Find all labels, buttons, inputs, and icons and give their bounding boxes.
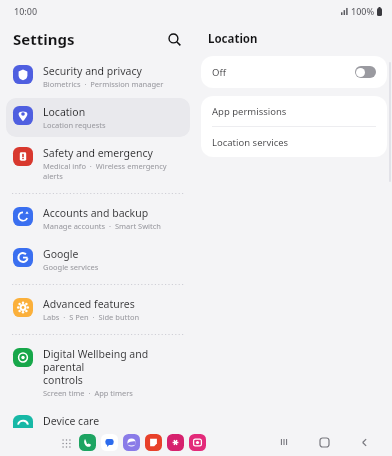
button[interactable]: Messages (101, 434, 118, 451)
button[interactable]: Location toggle, off (355, 66, 376, 78)
button[interactable]: Device care (6, 407, 190, 441)
button[interactable]: Safety and emergency (6, 139, 190, 188)
staticText: Accounts and backup (43, 206, 149, 220)
staticText: Digital Wellbeing and parental controls (43, 347, 183, 387)
staticText: 10:00 (14, 5, 38, 17)
button[interactable]: Location (6, 98, 190, 137)
button[interactable]: Accounts and backup (6, 199, 190, 238)
button[interactable]: Gallery (167, 434, 184, 451)
button[interactable]: Off (201, 56, 387, 88)
button[interactable]: Apps (58, 435, 74, 451)
button[interactable]: Camera (189, 434, 206, 451)
button[interactable]: App permissions (201, 96, 387, 126)
button[interactable]: Back (354, 432, 374, 452)
button[interactable]: Recents (274, 432, 294, 452)
staticText: Google services (43, 262, 99, 272)
staticText: 100% (351, 5, 375, 17)
staticText: Off (212, 66, 226, 79)
button[interactable]: Notes (145, 434, 162, 451)
staticText: Location services (212, 136, 289, 149)
staticText: Security and privacy (43, 64, 142, 78)
staticText: Location (208, 31, 258, 47)
staticText: Google (43, 247, 79, 261)
staticText: Biometrics · Permission manager (43, 79, 164, 89)
button[interactable]: Digital Wellbeing and parental controls (6, 340, 190, 405)
button[interactable]: Advanced features (6, 290, 190, 329)
staticText: Settings (13, 29, 75, 49)
staticText: Advanced features (43, 297, 135, 311)
staticText: Manage accounts · Smart Switch (43, 221, 161, 231)
button[interactable]: Security and privacy (6, 57, 190, 96)
staticText: Device care (43, 414, 100, 428)
staticText: Screen time · App timers (43, 388, 133, 398)
button[interactable]: Phone (79, 434, 96, 451)
button[interactable]: Google (6, 240, 190, 279)
button[interactable]: Home (314, 432, 334, 452)
button[interactable]: Internet (123, 434, 140, 451)
staticText: Location requests (43, 120, 106, 130)
staticText: Medical info · Wireless emergency alerts (43, 161, 183, 181)
staticText: Labs · S Pen · Side button (43, 312, 140, 322)
button[interactable]: Location services (201, 127, 387, 157)
staticText: App permissions (212, 105, 287, 118)
staticText: Location (43, 105, 86, 119)
staticText: Safety and emergency (43, 146, 153, 160)
button[interactable]: Search (162, 27, 186, 51)
